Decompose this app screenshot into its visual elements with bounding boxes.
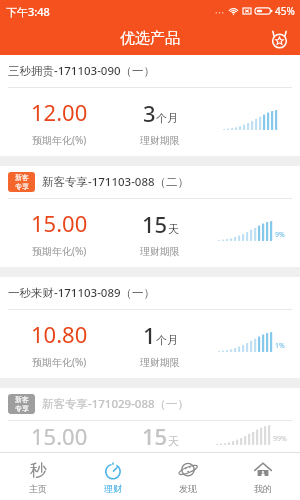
staticText: 专享: [15, 182, 29, 191]
staticText: 理财期限: [140, 356, 180, 369]
staticText: 新客: [15, 173, 29, 182]
staticText: 1%: [275, 341, 285, 351]
staticText: 天: [168, 434, 179, 448]
staticText: 新客: [15, 395, 29, 404]
staticText: 预期年化(%): [32, 133, 87, 147]
staticText: 秒: [30, 460, 47, 480]
staticText: 优选产品: [120, 29, 180, 48]
staticText: 预期年化(%): [32, 355, 87, 369]
button[interactable]: 秒: [0, 453, 75, 500]
button[interactable]: 新客: [0, 166, 300, 267]
staticText: 理财期限: [140, 245, 180, 258]
staticText: 3: [143, 98, 156, 128]
staticText: 15: [142, 421, 168, 451]
staticText: 9%: [275, 230, 285, 240]
staticText: 12.00: [31, 97, 88, 127]
staticText: 个月: [156, 333, 178, 347]
staticText: 新客专享-171029-088（一）: [42, 396, 190, 412]
staticText: 15.00: [31, 421, 88, 451]
staticText: 99%: [273, 434, 287, 444]
staticText: 理财期限: [140, 134, 180, 147]
staticText: 理财: [104, 483, 122, 494]
staticText: 1: [143, 320, 156, 350]
button[interactable]: 理财: [75, 453, 150, 500]
staticText: 预期年化(%): [32, 244, 87, 258]
button[interactable]: 三秒拥贵-171103-090（一）: [0, 55, 300, 156]
staticText: 天: [168, 222, 179, 236]
staticText: 15.00: [31, 208, 88, 238]
button[interactable]: 发现: [150, 453, 225, 500]
button[interactable]: 新客: [0, 388, 300, 452]
staticText: 主页: [29, 483, 47, 494]
staticText: 一秒来财-171103-089（一）: [8, 285, 156, 301]
staticText: 45%: [275, 4, 295, 18]
button[interactable]: 活动: [264, 24, 294, 54]
button[interactable]: 我的: [225, 453, 300, 500]
button[interactable]: 一秒来财-171103-089（一）: [0, 277, 300, 378]
staticText: 专享: [15, 404, 29, 413]
staticText: 我的: [254, 483, 272, 494]
staticText: 新客专享-171103-088（二）: [42, 174, 190, 190]
staticText: 15: [142, 209, 168, 239]
staticText: 发现: [179, 483, 197, 494]
staticText: 三秒拥贵-171103-090（一）: [8, 63, 156, 79]
staticText: 个月: [156, 111, 178, 125]
staticText: 下午3:48: [6, 4, 50, 19]
staticText: 10.80: [31, 319, 88, 349]
